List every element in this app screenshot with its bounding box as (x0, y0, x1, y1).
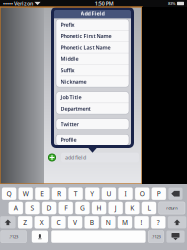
staticText: Z (23, 218, 27, 227)
staticText: return (166, 205, 177, 211)
staticText: C (56, 218, 60, 227)
staticText: T (74, 189, 78, 198)
button[interactable]: P (152, 188, 166, 200)
staticText: Nickname (60, 78, 86, 85)
staticText: Suffix (60, 67, 74, 74)
staticText: D (47, 204, 52, 212)
staticText: ••••• Verizon (3, 0, 33, 7)
staticText: J (115, 204, 117, 212)
staticText: X (40, 218, 44, 227)
button[interactable]: U (102, 188, 116, 200)
staticText: M (122, 218, 128, 227)
button[interactable]: Department (56, 103, 129, 114)
button[interactable]: N (101, 216, 115, 228)
button[interactable]: add field (44, 151, 142, 164)
staticText: add field (65, 154, 86, 161)
staticText: Add Field (80, 10, 104, 17)
staticText: L (147, 204, 150, 212)
button[interactable]: B (85, 216, 99, 228)
button[interactable]: Hide Keyboard (166, 230, 185, 243)
staticText: Twitter (60, 121, 78, 128)
button[interactable]: V (68, 216, 82, 228)
button[interactable]: Suffix (56, 65, 129, 76)
staticText: I (125, 189, 127, 198)
button[interactable]: L (142, 202, 156, 214)
button[interactable]: F (59, 202, 73, 214)
button[interactable] (51, 230, 145, 243)
button[interactable]: Nickname (56, 76, 129, 87)
button[interactable]: Phonetic First Name (56, 30, 129, 41)
button[interactable]: .?123 (1, 230, 26, 243)
staticText: K (130, 204, 134, 212)
button[interactable]: Shift (0, 216, 16, 228)
button[interactable]: Phonetic Last Name (56, 42, 129, 53)
button[interactable]: ! (134, 216, 149, 228)
button[interactable]: Q (2, 188, 16, 200)
button[interactable]: S (25, 202, 39, 214)
staticText: H (96, 204, 101, 212)
button[interactable]: T (69, 188, 83, 200)
button[interactable]: Y (85, 188, 99, 200)
staticText: V (73, 218, 77, 227)
staticText: .?123 (9, 234, 18, 239)
button[interactable]: D (42, 202, 56, 214)
button[interactable]: M (118, 216, 132, 228)
button[interactable]: Z (18, 216, 32, 228)
button[interactable]: ? (151, 216, 165, 228)
button[interactable]: A (9, 202, 23, 214)
staticText: 83% (168, 1, 176, 6)
button[interactable]: G (75, 202, 89, 214)
staticText: S (30, 204, 34, 212)
button[interactable]: Shift (168, 216, 186, 228)
button[interactable]: J (109, 202, 123, 214)
staticText: Middle (60, 55, 78, 62)
button[interactable]: Profile (56, 134, 129, 145)
button[interactable]: Twitter (56, 119, 129, 130)
button[interactable]: Job Title (56, 92, 129, 103)
staticText: Profile (60, 136, 76, 143)
button[interactable]: C (51, 216, 65, 228)
staticText: ? (157, 218, 160, 227)
button[interactable]: K (125, 202, 139, 214)
staticText: A (14, 204, 18, 212)
staticText: U (106, 189, 111, 198)
staticText: Phonetic Last Name (60, 44, 110, 51)
button[interactable]: X (35, 216, 49, 228)
staticText: O (140, 189, 145, 198)
staticText: Y (90, 189, 94, 198)
staticText: ! (141, 218, 143, 227)
staticText: F (64, 204, 67, 212)
button[interactable]: .?123 (148, 230, 164, 243)
button[interactable]: R (52, 188, 66, 200)
staticText: Prefix (60, 21, 74, 28)
staticText: Department (60, 105, 90, 112)
button[interactable]: return (158, 202, 185, 214)
staticText: W (23, 189, 29, 198)
button[interactable]: H (92, 202, 106, 214)
button[interactable]: E (35, 188, 49, 200)
button[interactable]: O (135, 188, 149, 200)
staticText: .?123 (151, 234, 160, 239)
staticText: P (157, 189, 161, 198)
button[interactable]: Delete (168, 188, 182, 200)
staticText: G (80, 204, 85, 212)
staticText: B (90, 218, 94, 227)
staticText: Job Title (60, 94, 81, 101)
staticText: N (106, 218, 111, 227)
staticText: E (40, 189, 44, 198)
staticText: Q (7, 189, 12, 198)
staticText: Phonetic First Name (60, 32, 111, 40)
button[interactable]: Middle (56, 53, 129, 64)
staticText: 1:50 PM (95, 0, 114, 7)
button[interactable]: Dictation (32, 230, 48, 243)
button[interactable]: I (118, 188, 133, 200)
button[interactable]: Prefix (56, 19, 129, 30)
button[interactable]: W (19, 188, 33, 200)
staticText: R (57, 189, 61, 198)
